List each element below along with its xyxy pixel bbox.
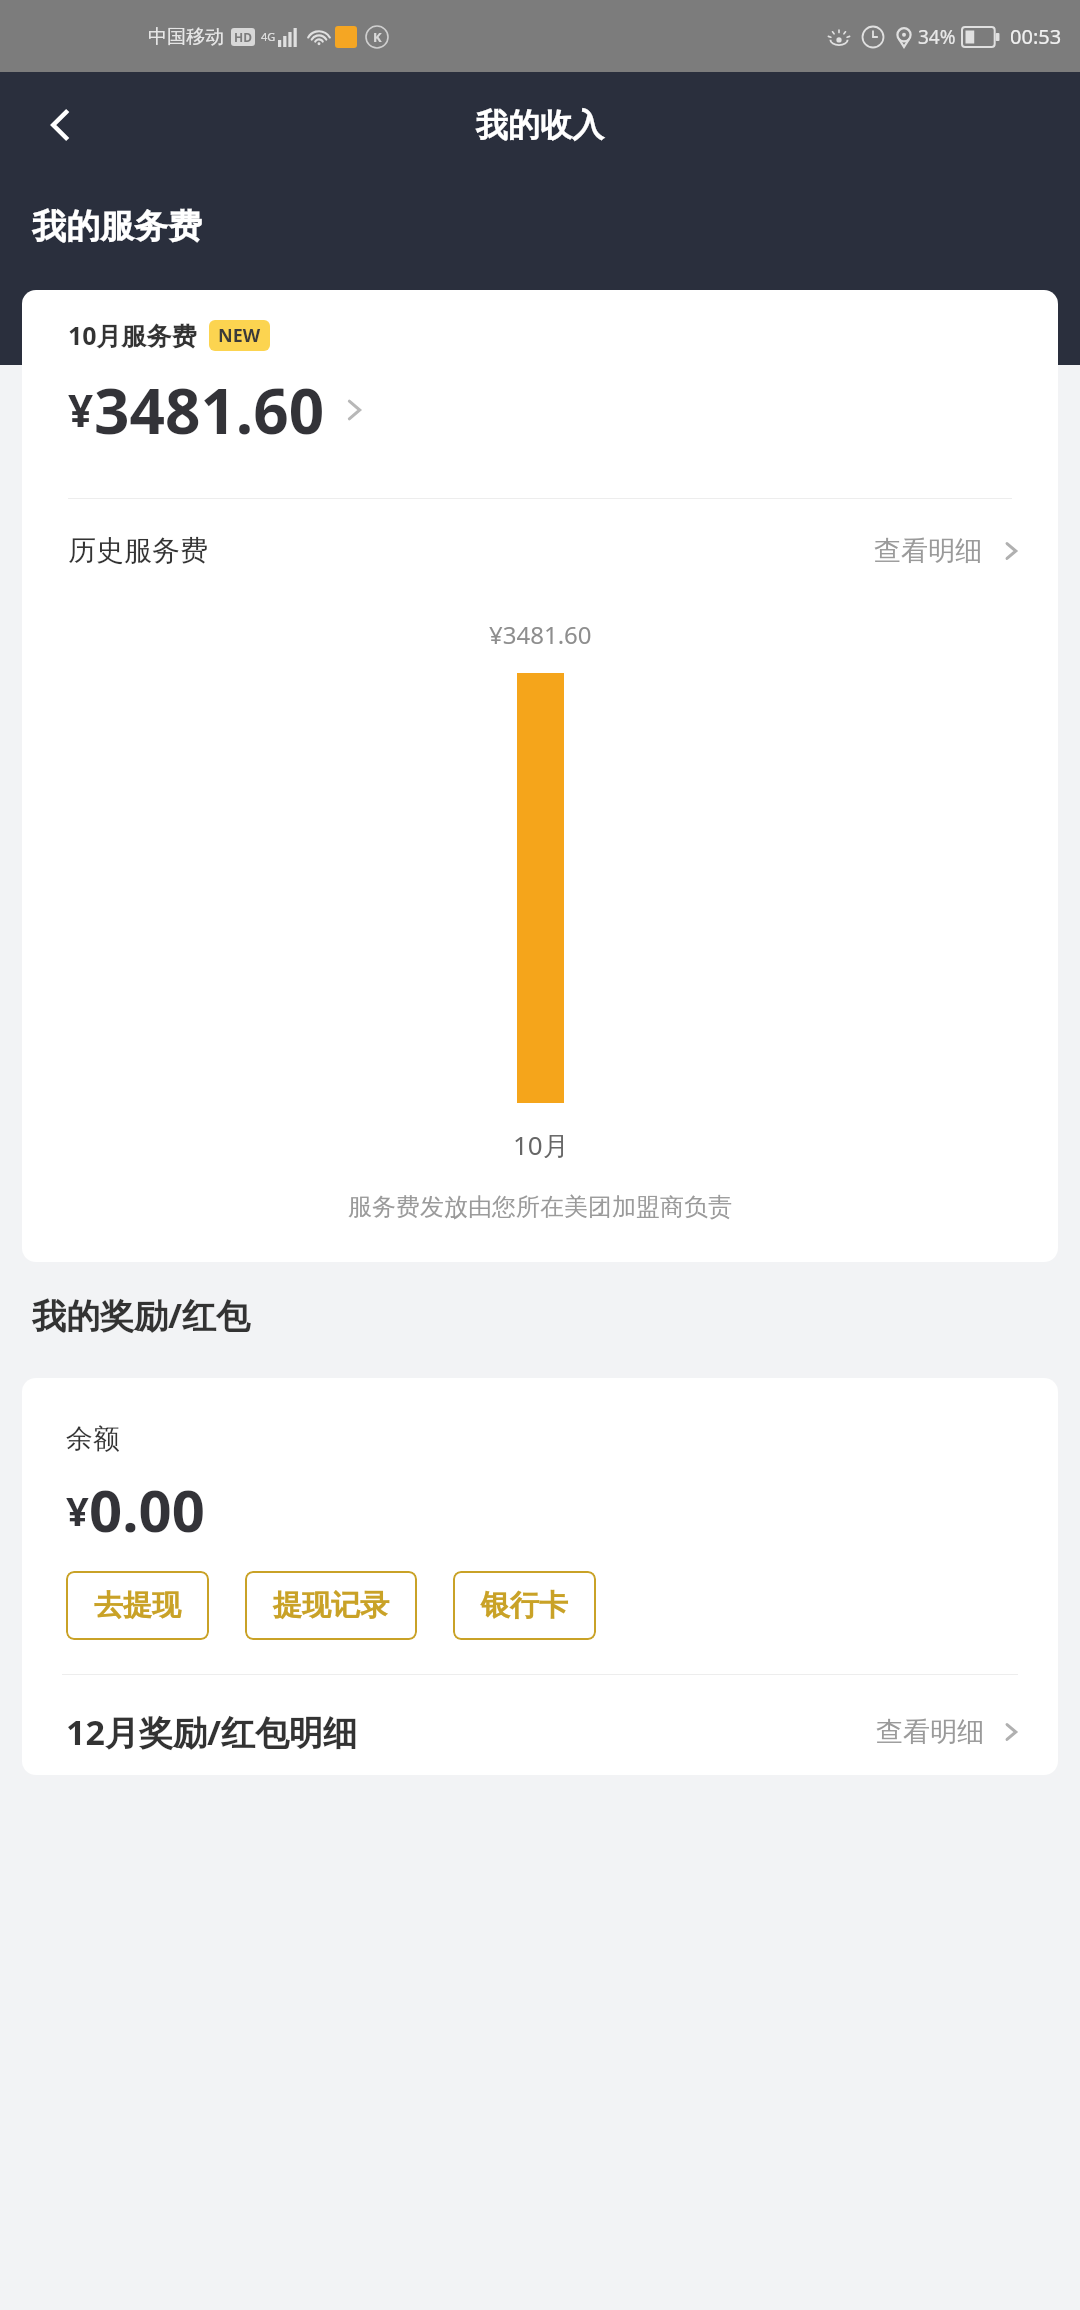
staticText: 我的收入 bbox=[476, 105, 604, 145]
staticText: 10月服务费 bbox=[68, 318, 197, 352]
button[interactable]: ¥ bbox=[22, 366, 1058, 458]
button[interactable]: 去提现 bbox=[66, 1571, 209, 1640]
staticText: ¥ bbox=[68, 380, 94, 440]
staticText: 12月奖励/红包明细 bbox=[66, 1709, 358, 1755]
staticText: 34% bbox=[918, 24, 956, 50]
button[interactable]: 历史服务费 bbox=[22, 499, 1058, 578]
staticText: 4G bbox=[261, 29, 276, 44]
button[interactable]: 银行卡 bbox=[453, 1571, 596, 1640]
staticText: 余额 bbox=[66, 1422, 120, 1456]
staticText: ¥ bbox=[66, 1483, 89, 1537]
staticText: 3481.60 bbox=[94, 368, 325, 452]
staticText: 历史服务费 bbox=[68, 533, 208, 568]
staticText: 我的服务费 bbox=[32, 205, 202, 248]
staticText: 服务费发放由您所在美团加盟商负责 bbox=[348, 1192, 732, 1222]
staticText: 去提现 bbox=[94, 1587, 181, 1624]
staticText: NEW bbox=[218, 323, 261, 348]
button[interactable]: 12月奖励/红包明细 bbox=[22, 1675, 1058, 1775]
staticText: K bbox=[373, 28, 382, 46]
staticText: 提现记录 bbox=[273, 1587, 389, 1624]
button[interactable]: 提现记录 bbox=[245, 1571, 417, 1640]
staticText: 查看明细 bbox=[876, 1715, 984, 1749]
staticText: ¥3481.60 bbox=[489, 618, 592, 651]
staticText: 0.00 bbox=[89, 1470, 205, 1549]
staticText: 00:53 bbox=[1010, 23, 1062, 50]
staticText: 查看明细 bbox=[874, 534, 982, 568]
staticText: 银行卡 bbox=[481, 1587, 568, 1624]
button[interactable]: Back bbox=[30, 95, 90, 155]
staticText: HD bbox=[234, 29, 252, 45]
staticText: 中国移动 bbox=[148, 25, 224, 49]
staticText: 10月 bbox=[513, 1127, 569, 1158]
staticText: 我的奖励/红包 bbox=[32, 1292, 251, 1338]
